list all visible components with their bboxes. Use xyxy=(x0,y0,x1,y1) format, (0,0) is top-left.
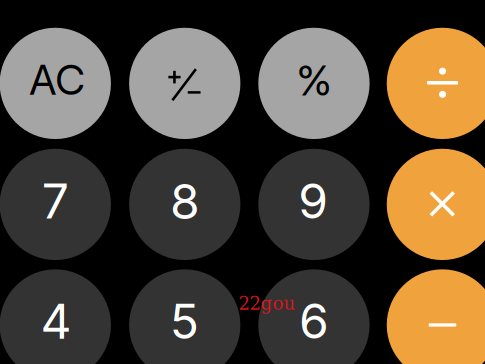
button[interactable]: AC xyxy=(0,28,111,139)
button[interactable]: 4 xyxy=(0,269,111,364)
staticText: 8 xyxy=(170,172,200,231)
button[interactable]: Toggle sign xyxy=(129,28,240,139)
staticText: AC xyxy=(29,55,85,105)
staticText: 9 xyxy=(298,172,328,230)
button[interactable]: 8 xyxy=(129,149,240,260)
staticText: 6 xyxy=(299,292,329,350)
button[interactable]: 9 xyxy=(258,149,370,260)
button[interactable]: Multiply xyxy=(387,149,485,260)
button[interactable]: % xyxy=(258,28,370,139)
staticText: 5 xyxy=(170,292,199,350)
staticText: 4 xyxy=(40,292,71,350)
button[interactable]: Subtract xyxy=(387,269,485,364)
button[interactable]: 7 xyxy=(0,149,111,260)
staticText: 7 xyxy=(42,172,69,230)
staticText: 22gou xyxy=(238,293,295,314)
button[interactable]: 6 xyxy=(258,269,370,364)
button[interactable]: Divide xyxy=(387,28,485,139)
button[interactable]: 5 xyxy=(129,269,240,364)
staticText: % xyxy=(296,55,331,105)
